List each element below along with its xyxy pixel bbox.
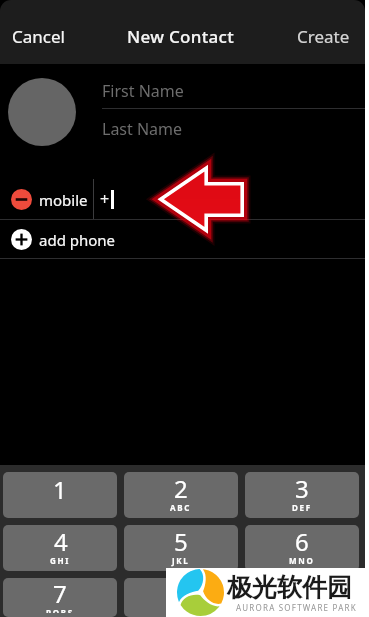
staticText: 7 <box>53 578 67 610</box>
other: Add phone <box>11 229 32 250</box>
button[interactable]: Add photo <box>8 78 76 146</box>
staticText: 3 <box>295 472 309 505</box>
button[interactable]: 8 <box>124 578 238 617</box>
button[interactable]: 6 <box>245 525 359 571</box>
staticText: GHI <box>50 555 71 566</box>
staticText: New Contact <box>127 25 234 48</box>
other: Remove phone <box>11 189 32 210</box>
staticText: WXYZ <box>287 607 317 613</box>
staticText: 9 <box>295 578 309 610</box>
staticText: ABC <box>170 502 192 513</box>
staticText: add phone <box>39 230 116 250</box>
staticText: 6 <box>295 525 309 558</box>
staticText: AURORA SOFTWARE PARK <box>236 602 357 613</box>
button[interactable]: Add phone <box>0 220 365 258</box>
staticText: 5 <box>174 525 188 558</box>
button[interactable]: Cancel <box>0 18 77 55</box>
button[interactable]: 3 <box>245 472 359 518</box>
button[interactable]: 5 <box>124 525 238 571</box>
staticText: 8 <box>175 578 189 610</box>
button[interactable]: 7 <box>3 578 117 617</box>
button[interactable]: 9 <box>245 578 359 617</box>
staticText: + <box>100 188 110 210</box>
staticText: Last Name <box>102 118 183 140</box>
staticText: PQRS <box>46 607 74 613</box>
staticText: DEF <box>292 502 312 513</box>
staticText: JKL <box>172 555 190 566</box>
staticText: Cancel <box>12 25 65 48</box>
button[interactable]: Remove phone <box>0 179 365 219</box>
staticText: MNO <box>289 555 315 566</box>
staticText: 4 <box>54 525 68 558</box>
button[interactable]: 4 <box>3 525 117 571</box>
button[interactable]: 2 <box>124 472 238 518</box>
staticText: mobile <box>39 190 88 210</box>
staticText: Create <box>297 25 350 48</box>
button[interactable]: Create <box>285 18 365 55</box>
button[interactable]: 1 <box>3 472 117 518</box>
staticText: First Name <box>102 80 184 102</box>
staticText: 极光软件园 <box>227 572 352 603</box>
staticText: 2 <box>174 472 188 505</box>
staticText: TUV <box>171 607 192 613</box>
staticText: 1 <box>53 473 67 506</box>
